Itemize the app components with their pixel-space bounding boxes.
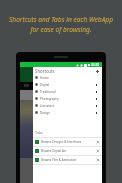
button[interactable]: Browse Film & Animation <box>33 156 102 164</box>
staticText: for ease of browsing. <box>30 25 92 34</box>
staticText: Browse Film & Animation <box>41 158 77 162</box>
button[interactable]: Shortcuts <box>33 67 102 74</box>
staticText: Digital <box>40 83 50 87</box>
staticText: Shortcuts <box>35 68 55 74</box>
button[interactable]: Digital <box>33 81 102 88</box>
staticText: Traditional <box>40 90 56 94</box>
button[interactable]: Close tab <box>96 149 100 153</box>
button[interactable]: Photography <box>33 95 102 102</box>
button[interactable]: Browse Designs & Interfaces <box>33 138 102 146</box>
staticText: Browse Digital Art <box>41 149 67 153</box>
button[interactable]: Browse Digital Art <box>33 147 102 155</box>
staticText: Browse Designs & Interfaces <box>41 140 82 144</box>
staticText: Home <box>40 76 49 80</box>
button[interactable]: Add shortcut <box>94 68 100 74</box>
button[interactable]: Close tab <box>96 140 100 144</box>
staticText: 04:30 <box>91 63 100 67</box>
staticText: Tabs <box>35 130 44 135</box>
button[interactable]: Design <box>33 109 102 116</box>
staticText: Shortcuts and Tabs in each WebApp <box>9 15 113 24</box>
button[interactable]: Close tab <box>96 158 100 162</box>
staticText: Design <box>40 111 51 115</box>
button[interactable]: Home <box>33 74 102 81</box>
button[interactable]: Literature <box>33 102 102 109</box>
button[interactable]: Traditional <box>33 88 102 95</box>
staticText: Literature <box>40 104 55 108</box>
staticText: Photography <box>40 97 59 101</box>
